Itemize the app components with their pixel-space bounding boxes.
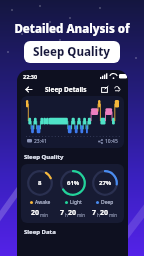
staticText: h bbox=[65, 212, 68, 218]
button[interactable]: Back bbox=[23, 84, 33, 94]
staticText: min bbox=[40, 212, 49, 218]
staticText: Light bbox=[70, 199, 82, 206]
staticText: 23:41 bbox=[34, 138, 47, 145]
staticText: 27% bbox=[99, 179, 112, 187]
staticText: Deep bbox=[101, 199, 114, 206]
button[interactable]: 27% bbox=[91, 169, 119, 218]
staticText: 8 bbox=[38, 179, 42, 187]
staticText: Sleep Quality bbox=[33, 44, 111, 60]
button[interactable]: 8 bbox=[26, 169, 54, 218]
staticText: Sleep Quality bbox=[24, 153, 64, 161]
button[interactable]: Share bbox=[99, 84, 109, 94]
staticText: 61% bbox=[67, 179, 80, 187]
staticText: 10:45 bbox=[105, 138, 118, 145]
staticText: Sleep Details bbox=[45, 85, 87, 94]
staticText: 20 bbox=[68, 208, 77, 218]
staticText: min bbox=[109, 212, 118, 218]
staticText: 7 bbox=[60, 208, 65, 218]
button[interactable]: Cloud sync bbox=[112, 84, 122, 94]
staticText: 22:30 bbox=[23, 73, 38, 80]
staticText: 20 bbox=[31, 208, 40, 218]
staticText: 7 bbox=[92, 208, 97, 218]
staticText: 20 bbox=[100, 208, 109, 218]
staticText: Detailed Analysis of bbox=[14, 21, 130, 37]
staticText: Awake bbox=[35, 199, 51, 206]
button[interactable]: 61% bbox=[59, 169, 87, 218]
staticText: h bbox=[97, 212, 100, 218]
button[interactable]: 23:41 bbox=[21, 96, 124, 148]
staticText: min bbox=[77, 212, 86, 218]
staticText: Sleep Data bbox=[24, 228, 56, 236]
